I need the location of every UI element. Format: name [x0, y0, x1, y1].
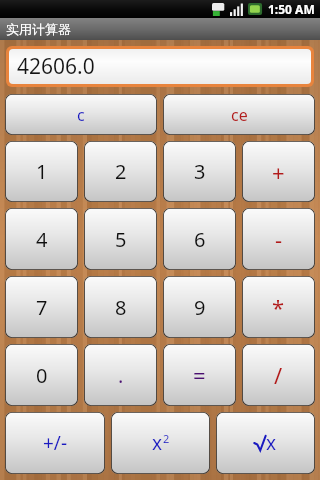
button[interactable]: x	[111, 412, 210, 474]
button[interactable]: 8	[84, 276, 157, 338]
button[interactable]: c	[5, 94, 157, 135]
button[interactable]: ce	[163, 94, 315, 135]
staticText: ce	[231, 104, 248, 126]
staticText: 6	[194, 226, 206, 253]
button[interactable]: *	[242, 276, 315, 338]
button[interactable]: 9	[163, 276, 236, 338]
staticText: 9	[194, 294, 206, 321]
staticText: 1:50 AM	[268, 1, 315, 17]
button[interactable]: .	[84, 344, 157, 406]
staticText: 实用计算器	[6, 21, 71, 37]
staticText: 4	[36, 226, 48, 253]
button[interactable]: +	[242, 141, 315, 202]
staticText: 8	[115, 294, 127, 321]
staticText: +/-	[43, 430, 68, 456]
staticText: 7	[36, 294, 48, 321]
staticText: /	[274, 360, 283, 390]
staticText: 2	[115, 158, 127, 185]
button[interactable]: /	[242, 344, 315, 406]
button[interactable]: 0	[5, 344, 78, 406]
staticText: 2	[163, 431, 170, 446]
button[interactable]: =	[163, 344, 236, 406]
staticText: 3	[194, 158, 206, 185]
button[interactable]: 6	[163, 208, 236, 270]
staticText: c	[77, 104, 85, 126]
button[interactable]: Square root	[216, 412, 315, 474]
button[interactable]: 1	[5, 141, 78, 202]
button[interactable]: 5	[84, 208, 157, 270]
staticText: 1	[36, 158, 48, 185]
button[interactable]: +/-	[5, 412, 105, 474]
button[interactable]: -	[242, 208, 315, 270]
staticText: -	[275, 224, 283, 254]
staticText: x	[152, 430, 163, 456]
staticText: 5	[115, 226, 127, 253]
button[interactable]: 4	[5, 208, 78, 270]
staticText: +	[272, 157, 285, 187]
staticText: =	[193, 360, 206, 390]
button[interactable]: 3	[163, 141, 236, 202]
button[interactable]: 7	[5, 276, 78, 338]
staticText: x	[266, 430, 277, 456]
staticText: 0	[36, 362, 48, 389]
button[interactable]: 2	[84, 141, 157, 202]
staticText: .	[118, 362, 124, 389]
button[interactable]: 42606.0	[9, 49, 311, 84]
staticText: 42606.0	[17, 52, 95, 81]
staticText: *	[272, 292, 285, 322]
